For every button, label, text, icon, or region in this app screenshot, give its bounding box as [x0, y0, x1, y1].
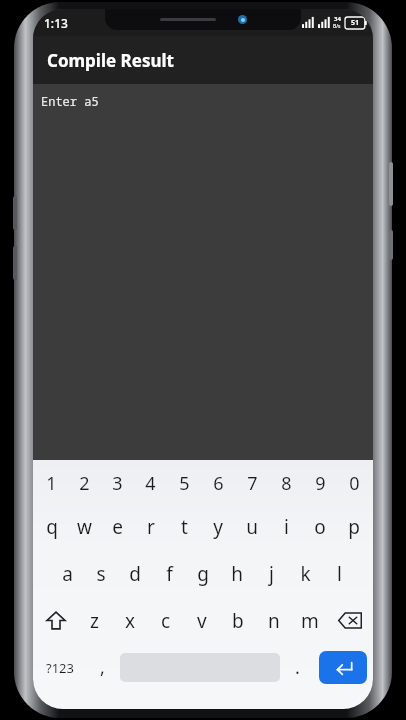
- button[interactable]: c: [148, 597, 184, 644]
- button[interactable]: ,: [85, 644, 120, 691]
- button[interactable]: u: [235, 503, 269, 550]
- button[interactable]: z: [77, 597, 112, 644]
- staticText: g: [197, 561, 209, 587]
- button[interactable]: q: [35, 503, 68, 550]
- staticText: 4: [145, 471, 156, 496]
- button[interactable]: y: [201, 503, 235, 550]
- staticText: 34: [334, 15, 341, 23]
- button[interactable]: .: [280, 644, 315, 691]
- staticText: s: [96, 561, 106, 587]
- button[interactable]: Backspace: [328, 597, 371, 644]
- button[interactable]: i: [269, 503, 303, 550]
- button[interactable]: h: [220, 550, 254, 597]
- button[interactable]: s: [84, 550, 118, 597]
- button[interactable]: v: [184, 597, 220, 644]
- button[interactable]: 3: [101, 464, 134, 503]
- button[interactable]: 1: [35, 464, 68, 503]
- staticText: h: [231, 561, 243, 587]
- staticText: .: [295, 655, 300, 680]
- button[interactable]: f: [152, 550, 186, 597]
- button[interactable]: 5: [167, 464, 201, 503]
- staticText: 6: [213, 471, 224, 496]
- button[interactable]: w: [68, 503, 101, 550]
- staticText: u: [246, 514, 258, 540]
- staticText: b: [232, 608, 244, 634]
- button[interactable]: g: [186, 550, 220, 597]
- button[interactable]: 6: [201, 464, 235, 503]
- staticText: x: [125, 608, 136, 634]
- staticText: l: [337, 561, 342, 587]
- button[interactable]: ?123: [35, 644, 85, 691]
- button[interactable]: l: [322, 550, 356, 597]
- staticText: ?123: [46, 659, 74, 677]
- staticText: t: [181, 514, 188, 540]
- button[interactable]: n: [256, 597, 292, 644]
- staticText: r: [147, 514, 155, 540]
- button[interactable]: 7: [235, 464, 269, 503]
- button[interactable]: 9: [303, 464, 337, 503]
- button[interactable]: 4: [134, 464, 167, 503]
- button[interactable]: r: [134, 503, 167, 550]
- staticText: Compile Result: [47, 49, 174, 72]
- button[interactable]: b: [220, 597, 256, 644]
- staticText: m: [301, 608, 319, 634]
- button[interactable]: j: [254, 550, 288, 597]
- staticText: a: [62, 561, 73, 587]
- button[interactable]: d: [118, 550, 152, 597]
- staticText: 1:13: [44, 15, 68, 31]
- button[interactable]: Enter: [319, 651, 367, 684]
- button[interactable]: p: [337, 503, 371, 550]
- staticText: y: [213, 514, 223, 540]
- button[interactable]: 8: [269, 464, 303, 503]
- staticText: B/s: [333, 23, 341, 30]
- staticText: n: [268, 608, 280, 634]
- staticText: e: [112, 514, 123, 540]
- staticText: 3: [112, 471, 123, 496]
- staticText: 7: [247, 471, 258, 496]
- staticText: i: [284, 514, 289, 540]
- button[interactable]: Shift: [35, 597, 77, 644]
- staticText: 8: [281, 471, 292, 496]
- staticText: p: [348, 514, 360, 540]
- staticText: c: [161, 608, 171, 634]
- staticText: Enter a5: [41, 93, 99, 109]
- staticText: q: [46, 514, 58, 540]
- staticText: 5: [179, 471, 190, 496]
- button[interactable]: e: [101, 503, 134, 550]
- button[interactable]: k: [288, 550, 322, 597]
- staticText: d: [129, 561, 141, 587]
- staticText: k: [300, 561, 311, 587]
- button[interactable]: 0: [337, 464, 371, 503]
- button[interactable]: Compile Result: [33, 36, 373, 84]
- button[interactable]: x: [112, 597, 148, 644]
- staticText: ,: [100, 655, 105, 680]
- staticText: 51: [351, 18, 360, 28]
- button[interactable]: a: [50, 550, 84, 597]
- button[interactable]: 2: [68, 464, 101, 503]
- staticText: v: [197, 608, 207, 634]
- staticText: 9: [315, 471, 326, 496]
- button[interactable]: m: [292, 597, 328, 644]
- button[interactable]: o: [303, 503, 337, 550]
- staticText: 2: [79, 471, 90, 496]
- staticText: 0: [349, 471, 360, 496]
- staticText: o: [314, 514, 326, 540]
- staticText: f: [166, 561, 173, 587]
- staticText: j: [269, 561, 274, 587]
- button[interactable]: t: [167, 503, 201, 550]
- staticText: 1: [46, 471, 57, 496]
- staticText: z: [90, 608, 99, 634]
- staticText: w: [77, 514, 92, 540]
